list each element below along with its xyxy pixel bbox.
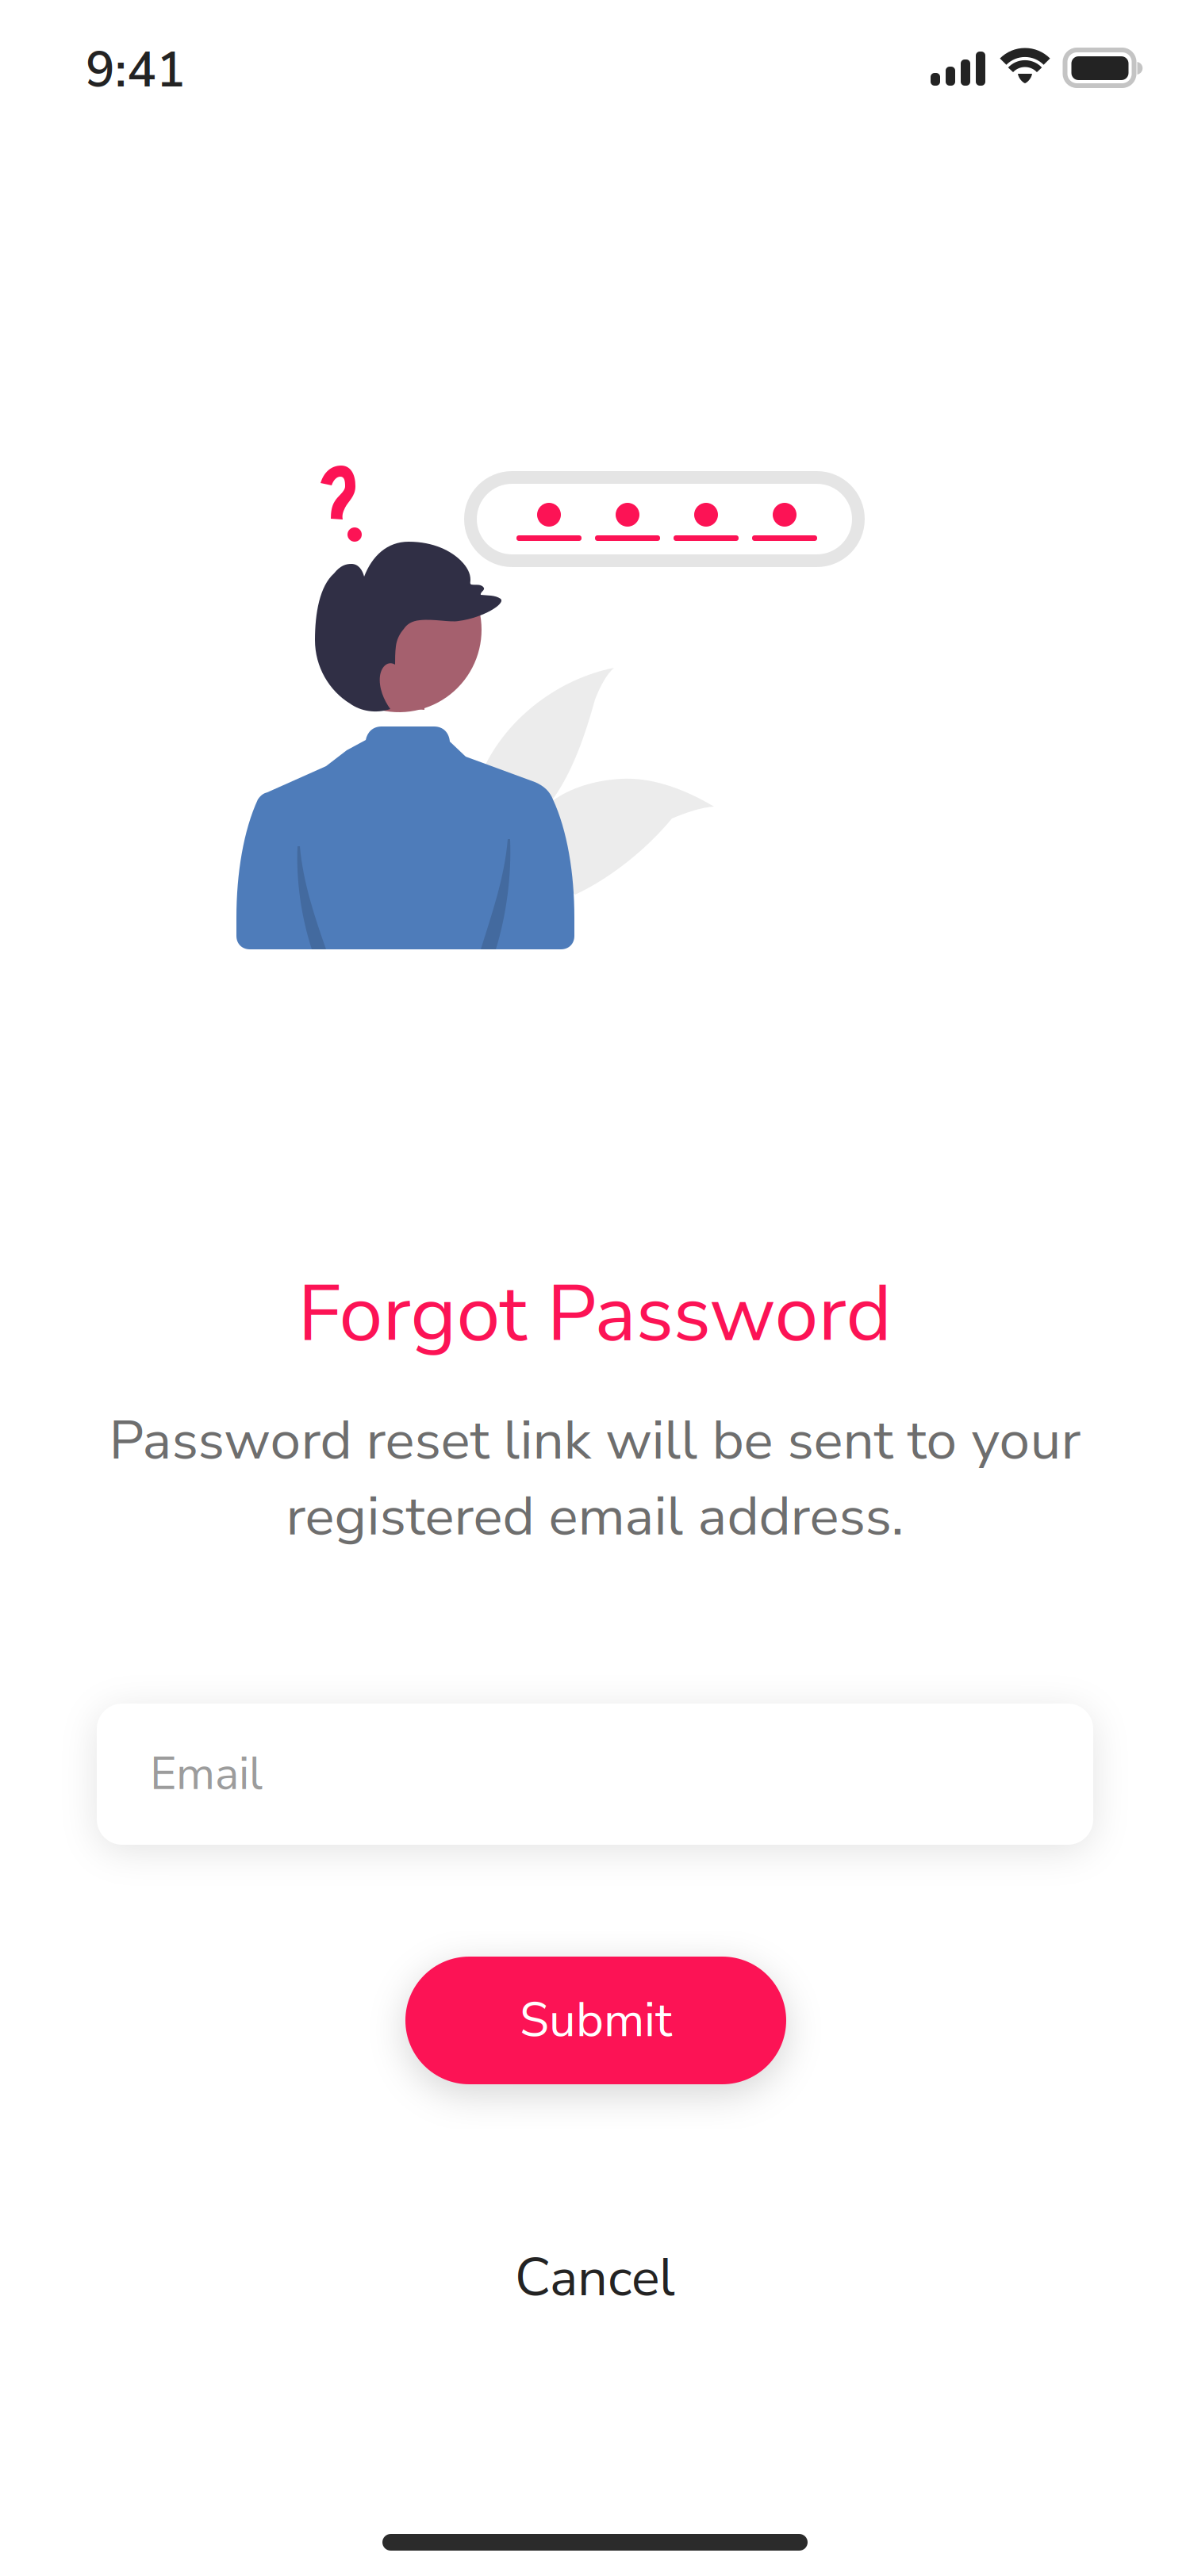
button[interactable]: Cancel [468, 2234, 722, 2321]
staticText: Forgot Password [298, 1261, 892, 1368]
staticText: Password reset link will be sent to your [109, 1403, 1081, 1478]
staticText: 9:41 [86, 37, 186, 104]
staticText: Email [150, 1743, 263, 1805]
staticText: Cancel [515, 2242, 675, 2314]
button[interactable]: Submit [405, 1957, 786, 2084]
staticText: registered email address. [286, 1479, 904, 1554]
staticText: Submit [520, 1988, 672, 2053]
